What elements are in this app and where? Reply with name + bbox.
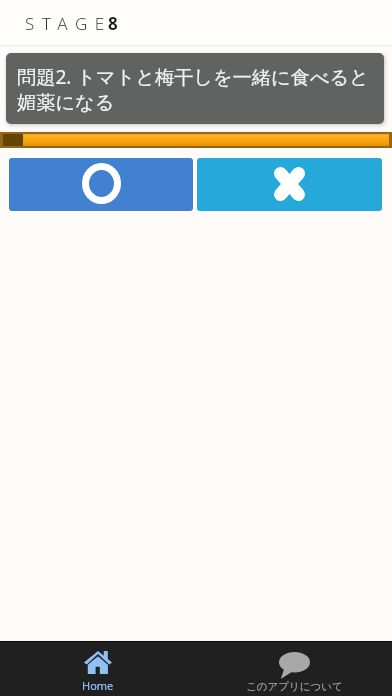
button[interactable]: Home — [0, 642, 196, 696]
staticText: 8 — [108, 12, 118, 35]
staticText: STAGE — [25, 12, 112, 35]
staticText: Home — [82, 678, 114, 693]
button[interactable]: まる — [9, 158, 193, 211]
staticText: このアプリについて — [246, 680, 343, 693]
button[interactable]: このアプリについて — [196, 642, 392, 696]
staticText: 問題2. トマトと梅干しを一緒に食べると媚薬になる — [17, 63, 373, 115]
button[interactable]: ばつ — [197, 158, 382, 211]
